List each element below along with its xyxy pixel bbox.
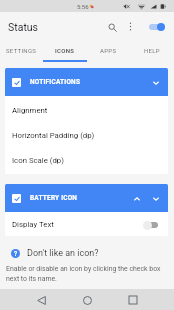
button[interactable]: Alignment [5,98,168,123]
staticText: Alignment [12,106,48,115]
staticText: Enable or disable an icon by clicking th… [6,265,164,283]
button[interactable]: BATTERY ICON [5,184,168,212]
staticText: 5:56 [77,3,89,10]
button[interactable]: Icon Scale (dp) [5,148,168,173]
button[interactable]: APPS [86,41,130,60]
staticText: HELP [144,47,160,54]
button[interactable]: Horizontal Padding (dp) [5,123,168,148]
button[interactable]: Display text toggle [142,216,166,232]
staticText: ? [14,250,18,258]
staticText: BATTERY ICON [30,194,78,202]
button[interactable]: Collapse [148,75,163,90]
staticText: NOTIFICATIONS [30,78,81,86]
button[interactable]: Search [102,17,122,37]
button[interactable]: Move up [129,191,144,206]
staticText: SETTINGS [6,47,37,54]
button[interactable]: ICONS [43,41,86,60]
button[interactable]: Back [32,291,50,309]
button[interactable]: HELP [130,41,174,60]
staticText: Display Text [12,220,54,229]
button[interactable]: ? [0,246,174,260]
button[interactable]: Enable status bar icons [144,17,170,37]
button[interactable]: More options [122,18,139,35]
staticText: Don't like an icon? [27,248,99,259]
button[interactable]: Move down [148,191,163,206]
staticText: Horizontal Padding (dp) [12,131,95,140]
staticText: APPS [100,47,117,54]
button[interactable]: Home [78,291,96,309]
staticText: Icon Scale (dp) [12,156,64,165]
button[interactable]: Display Text [5,212,168,236]
button[interactable]: NOTIFICATIONS [5,68,168,96]
button[interactable]: Recents [124,291,142,309]
staticText: ICONS [55,47,75,54]
staticText: Status [8,21,39,33]
button[interactable]: SETTINGS [0,41,43,60]
